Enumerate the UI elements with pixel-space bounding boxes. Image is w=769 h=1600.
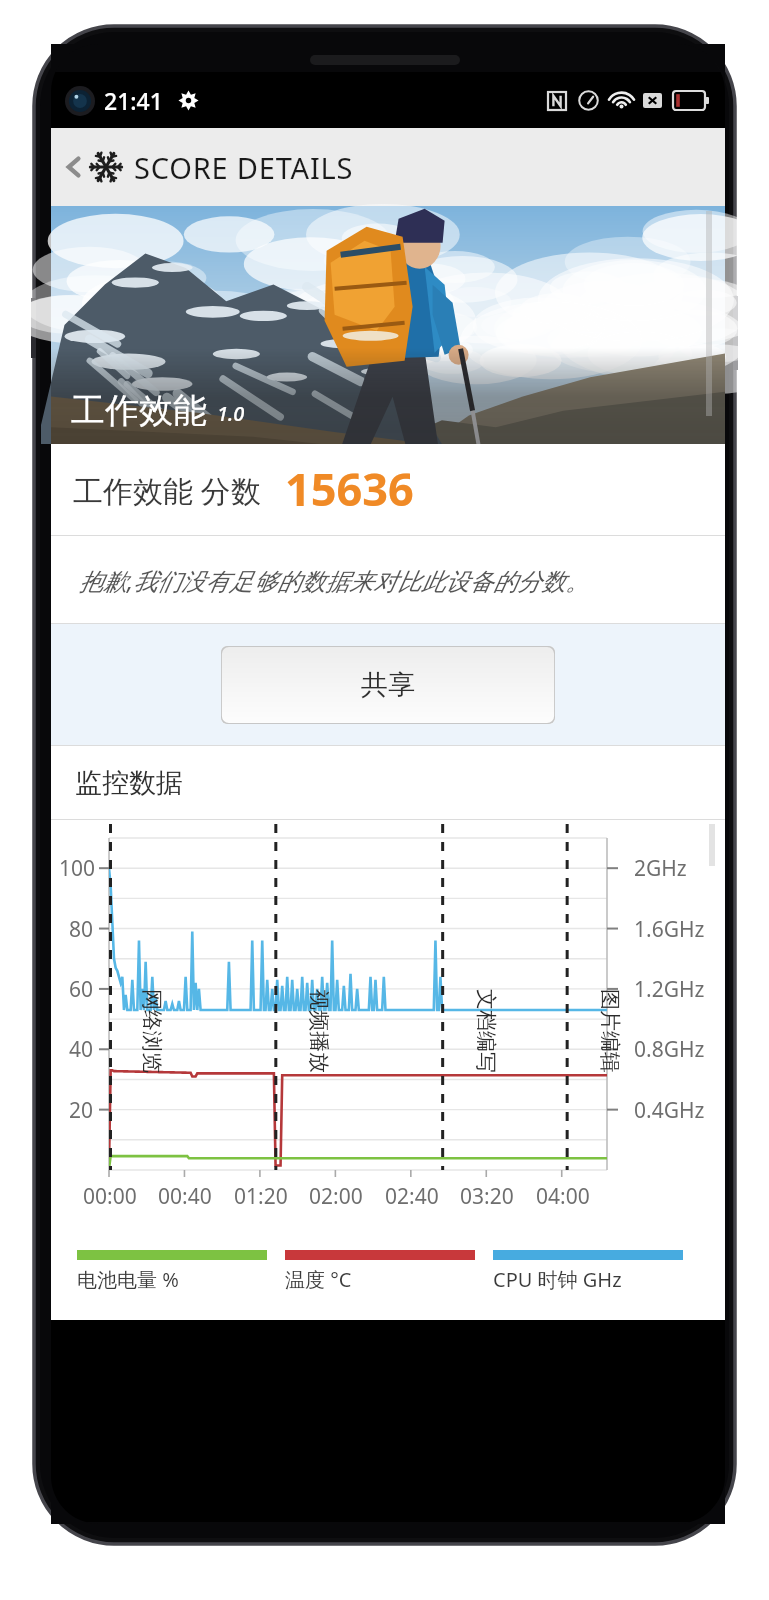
- staticText: 60: [69, 975, 94, 1004]
- button[interactable]: 共享: [221, 646, 555, 724]
- other: Back: [63, 156, 85, 178]
- staticText: 00:00: [83, 1182, 137, 1211]
- staticText: 温度 °C: [285, 1266, 352, 1293]
- staticText: 1.6GHz: [634, 915, 705, 944]
- staticText: 03:20: [460, 1182, 514, 1211]
- staticText: 02:40: [385, 1182, 439, 1211]
- button[interactable]: 工作效能: [51, 206, 725, 444]
- staticText: 网络浏览: [139, 989, 165, 1073]
- staticText: 02:00: [309, 1182, 363, 1211]
- staticText: 工作效能: [71, 389, 207, 432]
- staticText: 共享: [361, 668, 415, 702]
- button[interactable]: Back: [51, 128, 725, 206]
- staticText: 0.8GHz: [634, 1035, 705, 1064]
- staticText: 00:40: [158, 1182, 212, 1211]
- staticText: 1.2GHz: [634, 975, 705, 1004]
- staticText: 0.4GHz: [634, 1096, 705, 1125]
- staticText: 文档编写: [473, 989, 499, 1073]
- staticText: 20: [69, 1096, 94, 1125]
- staticText: 电池电量 %: [77, 1266, 179, 1293]
- staticText: 抱歉,我们没有足够的数据来对比此设备的分数。: [79, 564, 590, 597]
- staticText: SCORE DETAILS: [134, 148, 354, 187]
- staticText: 15636: [285, 458, 414, 519]
- staticText: 21:41: [104, 85, 163, 116]
- staticText: 40: [69, 1035, 94, 1064]
- staticText: 04:00: [536, 1182, 590, 1211]
- staticText: 监控数据: [75, 766, 183, 800]
- staticText: 工作效能 分数: [73, 470, 261, 511]
- staticText: 01:20: [234, 1182, 288, 1211]
- staticText: 100: [59, 854, 96, 883]
- staticText: 图片编辑: [597, 989, 623, 1073]
- staticText: 80: [69, 915, 94, 944]
- staticText: CPU 时钟 GHz: [493, 1266, 622, 1293]
- staticText: 视频播放: [306, 989, 332, 1073]
- staticText: 1.0: [217, 400, 245, 427]
- staticText: 2GHz: [634, 854, 687, 883]
